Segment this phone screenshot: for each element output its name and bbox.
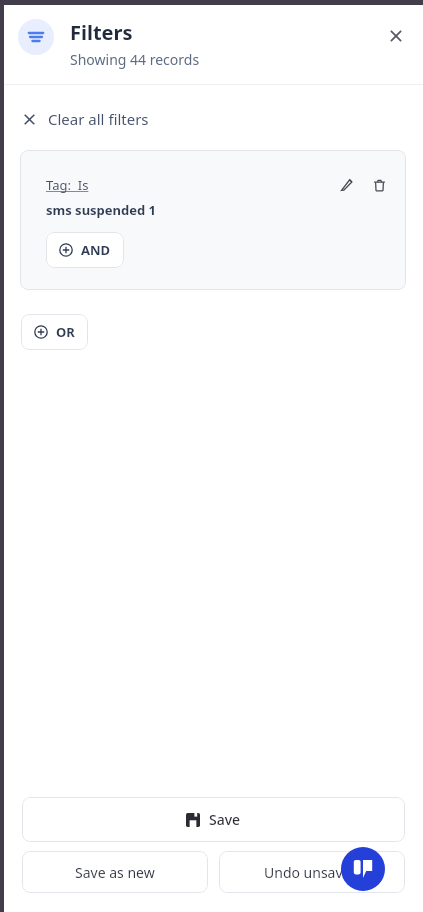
staticText: Filters bbox=[70, 19, 133, 46]
button[interactable]: AND bbox=[46, 232, 124, 268]
staticText: Save as new bbox=[75, 863, 155, 882]
button[interactable]: Save bbox=[22, 797, 405, 842]
button[interactable]: Close bbox=[379, 19, 413, 53]
button[interactable]: Open chat support bbox=[341, 847, 385, 891]
staticText: OR bbox=[56, 323, 75, 341]
staticText: Showing 44 records bbox=[70, 50, 200, 69]
staticText: AND bbox=[81, 241, 111, 259]
staticText: Clear all filters bbox=[48, 109, 149, 129]
button[interactable]: Edit filter bbox=[334, 172, 360, 198]
button[interactable]: Clear all filters bbox=[16, 105, 155, 133]
button[interactable]: OR bbox=[21, 314, 88, 350]
button[interactable]: Delete filter bbox=[366, 172, 392, 198]
button[interactable]: Save as new bbox=[22, 851, 208, 893]
staticText: Save bbox=[209, 810, 241, 829]
staticText: sms suspended 1 bbox=[46, 201, 157, 219]
staticText: Undo unsaved bbox=[264, 863, 360, 882]
button[interactable]: Undo unsaved bbox=[219, 851, 405, 893]
button[interactable]: Tag: Is bbox=[46, 176, 89, 194]
